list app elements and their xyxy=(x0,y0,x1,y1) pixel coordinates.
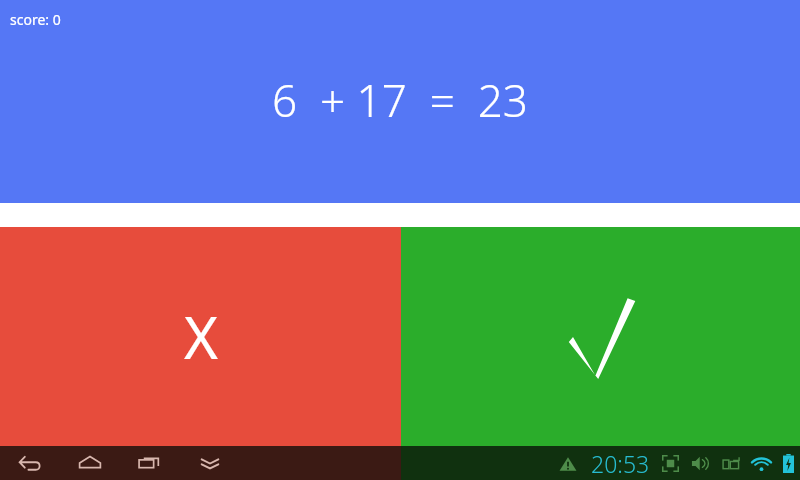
button[interactable]: Home xyxy=(60,446,120,480)
staticText: X xyxy=(184,297,218,376)
button[interactable]: Recents xyxy=(120,446,180,480)
staticText: 20:53 xyxy=(591,448,650,479)
staticText: score: 0 xyxy=(10,10,61,29)
staticText: 6 + 17 = 23 xyxy=(272,70,528,130)
button[interactable]: Back xyxy=(0,446,60,480)
button[interactable]: Hide xyxy=(180,446,240,480)
button[interactable]: Correct xyxy=(401,227,800,446)
button[interactable]: Wrong xyxy=(0,227,401,446)
